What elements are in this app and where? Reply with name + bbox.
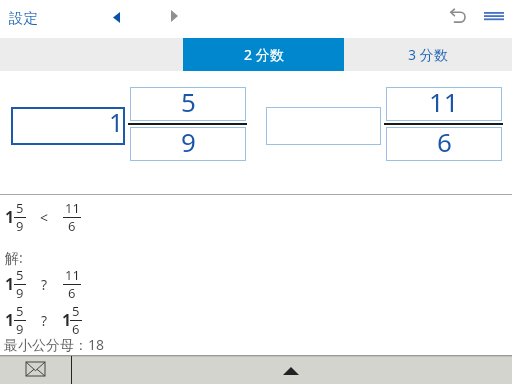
staticText: 5 [16, 302, 24, 317]
staticText: 5 [72, 302, 80, 317]
staticText: 2 分数 [244, 45, 284, 64]
staticText: 1 [5, 273, 15, 295]
button[interactable]: 6 [386, 127, 502, 161]
button[interactable]: Messages [21, 359, 49, 381]
staticText: 設定 [9, 9, 38, 27]
staticText: < [40, 208, 49, 227]
staticText: 1 [109, 105, 124, 139]
button[interactable]: 5 [130, 87, 246, 121]
button[interactable]: Expand [276, 360, 307, 382]
button[interactable]: Undo [444, 3, 474, 31]
staticText: 6 [68, 284, 76, 299]
staticText: 9 [16, 320, 24, 335]
button[interactable]: 9 [130, 127, 246, 161]
staticText: 5 [16, 199, 24, 214]
button[interactable]: Menu [478, 2, 510, 32]
button[interactable] [266, 107, 381, 145]
button[interactable]: 設定 [2, 6, 45, 30]
staticText: 11 [429, 84, 459, 118]
staticText: ? [41, 311, 48, 330]
staticText: 1 [62, 309, 72, 331]
button[interactable]: 2 分数 [183, 38, 344, 71]
staticText: 11 [65, 266, 80, 281]
staticText: 1 [5, 206, 15, 228]
staticText: 6 [72, 320, 80, 335]
button[interactable]: Previous [103, 1, 129, 31]
staticText: 6 [437, 124, 452, 158]
button[interactable]: 11 [386, 87, 502, 121]
staticText: 6 [68, 217, 76, 232]
button[interactable]: 3 分数 [344, 38, 512, 71]
staticText: 11 [65, 199, 80, 214]
button[interactable]: 1 [11, 107, 125, 145]
staticText: ? [41, 275, 48, 294]
staticText: 最小公分母：18 [4, 335, 105, 354]
staticText: 9 [16, 284, 24, 299]
button[interactable]: Next [161, 0, 187, 30]
staticText: 5 [16, 266, 24, 281]
staticText: 解: [5, 248, 23, 267]
staticText: 5 [181, 84, 196, 118]
staticText: 1 [5, 309, 15, 331]
staticText: 3 分数 [408, 45, 448, 64]
staticText: 9 [16, 217, 24, 232]
staticText: 9 [181, 124, 196, 158]
